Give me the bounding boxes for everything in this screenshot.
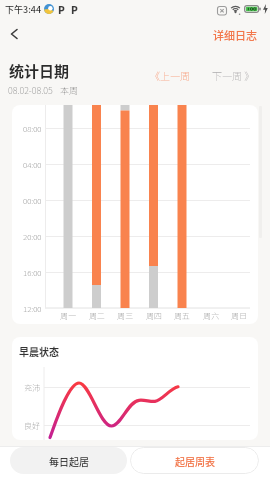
button[interactable]: 详细日志: [205, 26, 265, 44]
staticText: 详细日志: [213, 27, 257, 43]
button[interactable]: 下一周 》: [210, 67, 256, 83]
staticText: 00:00: [23, 195, 42, 207]
staticText: 16:00: [23, 267, 42, 279]
staticText: 08:00: [23, 123, 42, 135]
staticText: 周日: [231, 310, 247, 322]
staticText: 周三: [117, 310, 133, 322]
staticText: 每日起居: [49, 454, 89, 468]
staticText: 周二: [89, 310, 105, 322]
staticText: 周六: [203, 310, 219, 322]
staticText: 统计日期: [9, 60, 70, 82]
button[interactable]: 起居周表: [130, 447, 259, 474]
staticText: 周一: [60, 310, 76, 322]
staticText: 下一周 》: [212, 68, 255, 82]
staticText: 起居周表: [175, 454, 215, 468]
staticText: 《上一周: [150, 68, 190, 82]
staticText: 良好: [24, 420, 40, 432]
button[interactable]: 每日起居: [10, 447, 127, 474]
staticText: P: [58, 2, 65, 16]
staticText: 08.02-08.05: [8, 84, 53, 97]
staticText: 本周: [60, 84, 79, 97]
staticText: 04:00: [23, 159, 42, 171]
button[interactable]: 《上一周: [147, 67, 193, 83]
button[interactable]: [4, 24, 24, 44]
staticText: 下午3:44: [5, 3, 42, 16]
staticText: 20:00: [23, 231, 42, 243]
staticText: P: [71, 2, 78, 16]
staticText: 周四: [146, 310, 162, 322]
staticText: 早晨状态: [19, 344, 59, 358]
staticText: 12:00: [23, 303, 42, 315]
staticText: 充沛: [24, 382, 40, 394]
staticText: 周五: [174, 310, 190, 322]
